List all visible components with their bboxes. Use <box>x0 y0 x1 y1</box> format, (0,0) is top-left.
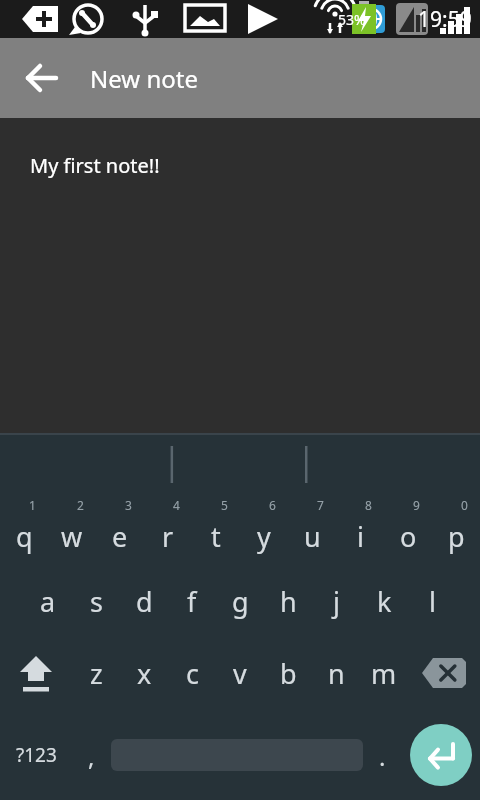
staticText: b <box>280 655 297 692</box>
staticText: v <box>233 655 247 692</box>
button[interactable]: j <box>312 565 360 637</box>
button[interactable]: 9 <box>384 495 432 565</box>
staticText: g <box>232 583 249 620</box>
button[interactable]: h <box>264 565 312 637</box>
staticText: 0 <box>461 497 468 513</box>
button[interactable]: 6 <box>240 495 288 565</box>
button[interactable]: 4 <box>144 495 192 565</box>
staticText: z <box>90 655 103 692</box>
staticText: ?123 <box>16 742 57 768</box>
button[interactable]: c <box>168 637 216 709</box>
button[interactable]: k <box>360 565 408 637</box>
staticText: x <box>137 655 152 692</box>
button[interactable]: Space <box>111 709 363 800</box>
button[interactable]: Shift <box>0 637 72 709</box>
staticText: a <box>40 583 56 620</box>
button[interactable]: v <box>216 637 264 709</box>
button[interactable]: z <box>72 637 120 709</box>
staticText: e <box>112 518 128 555</box>
staticText: y <box>257 518 271 555</box>
staticText: l <box>429 583 436 620</box>
button[interactable]: d <box>120 565 168 637</box>
staticText: f <box>187 583 197 620</box>
staticText: c <box>186 655 199 692</box>
staticText: 5 <box>221 497 228 513</box>
button[interactable]: x <box>120 637 168 709</box>
button[interactable]: m <box>360 637 408 709</box>
staticText: 3 <box>125 497 132 513</box>
staticText: q <box>16 518 33 555</box>
button[interactable]: Back <box>14 51 68 105</box>
button[interactable]: 1 <box>0 495 48 565</box>
staticText: 53% <box>338 10 366 29</box>
staticText: w <box>61 518 83 555</box>
staticText: . <box>379 740 386 773</box>
staticText: o <box>400 518 417 555</box>
button[interactable]: s <box>72 565 120 637</box>
button[interactable]: , <box>72 709 111 800</box>
staticText: My first note!! <box>30 152 160 179</box>
button[interactable]: g <box>216 565 264 637</box>
button[interactable]: l <box>408 565 456 637</box>
staticText: m <box>371 655 397 692</box>
staticText: p <box>448 518 465 555</box>
staticText: New note <box>90 62 198 95</box>
button[interactable]: 0 <box>432 495 480 565</box>
button[interactable]: 3 <box>96 495 144 565</box>
button[interactable]: Backspace <box>408 637 480 709</box>
button[interactable]: 7 <box>288 495 336 565</box>
button[interactable]: 8 <box>336 495 384 565</box>
staticText: 7 <box>317 497 324 513</box>
button[interactable]: 5 <box>192 495 240 565</box>
button[interactable]: . <box>363 709 402 800</box>
staticText: 9 <box>413 497 420 513</box>
staticText: j <box>333 583 340 620</box>
button[interactable]: Enter <box>402 709 480 800</box>
staticText: d <box>136 583 153 620</box>
staticText: t <box>211 518 221 555</box>
button[interactable]: n <box>312 637 360 709</box>
staticText: h <box>280 583 297 620</box>
button[interactable]: ?123 <box>0 709 72 800</box>
staticText: 1 <box>29 497 36 513</box>
staticText: r <box>162 518 174 555</box>
staticText: 19:59 <box>418 5 472 34</box>
button[interactable]: 2 <box>48 495 96 565</box>
staticText: i <box>357 518 364 555</box>
staticText: , <box>88 740 95 773</box>
staticText: u <box>304 518 321 555</box>
button[interactable]: a <box>24 565 72 637</box>
staticText: k <box>377 583 392 620</box>
staticText: s <box>90 583 103 620</box>
staticText: n <box>328 655 345 692</box>
staticText: 4 <box>173 497 180 513</box>
staticText: 6 <box>269 497 276 513</box>
staticText: 2 <box>77 497 84 513</box>
button[interactable]: b <box>264 637 312 709</box>
button[interactable]: f <box>168 565 216 637</box>
staticText: 8 <box>365 497 372 513</box>
